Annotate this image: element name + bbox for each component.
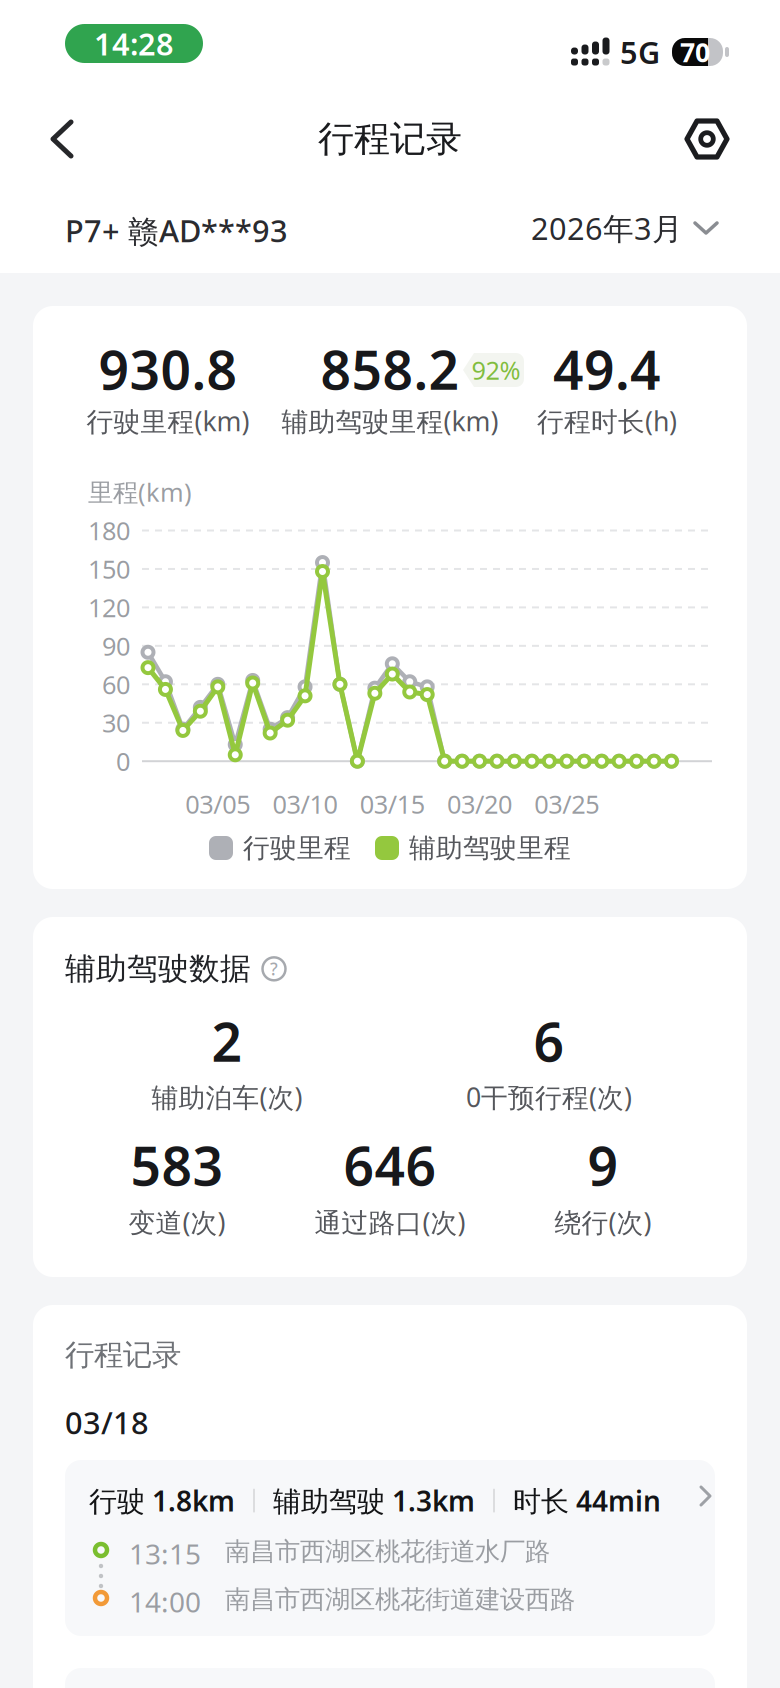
staticText: 03/25 <box>534 787 599 821</box>
staticText: 858.2 <box>320 334 459 404</box>
staticText: 03/05 <box>185 787 250 821</box>
staticText: 5G <box>620 32 660 72</box>
staticText: 辅助泊车(次) <box>151 1079 302 1115</box>
staticText: 930.8 <box>98 334 237 404</box>
button[interactable]: 说明 <box>261 956 287 982</box>
staticText: 30 <box>102 706 130 739</box>
staticText: 14:28 <box>94 23 174 64</box>
staticText: 150 <box>88 552 130 586</box>
staticText: ? <box>270 957 278 980</box>
staticText: 变道(次) <box>128 1204 225 1240</box>
staticText: 9 <box>587 1130 618 1200</box>
staticText: 180 <box>88 514 130 547</box>
staticText: 2026年3月 <box>531 208 683 248</box>
staticText: 行程记录 <box>318 117 462 161</box>
staticText: 03/20 <box>447 787 512 821</box>
staticText: 60 <box>102 667 130 701</box>
staticText: 0 <box>116 744 130 778</box>
staticText: 通过路口(次) <box>314 1204 465 1240</box>
button[interactable]: 选择月份 <box>531 208 719 248</box>
button[interactable]: Back <box>40 111 84 167</box>
staticText: 辅助驾驶 1.3km <box>273 1482 475 1519</box>
staticText: 90 <box>102 629 130 663</box>
staticText: 2 <box>211 1006 242 1076</box>
staticText: 646 <box>343 1130 436 1200</box>
staticText: 03/10 <box>272 787 337 821</box>
staticText: 49.4 <box>553 334 661 404</box>
staticText: 辅助驾驶里程 <box>409 832 571 864</box>
staticText: 绕行(次) <box>554 1204 651 1240</box>
staticText: 0干预行程(次) <box>466 1079 632 1115</box>
staticText: 70 <box>680 34 710 70</box>
staticText: 行驶里程(km) <box>86 403 249 439</box>
staticText: 里程(km) <box>88 475 192 509</box>
button[interactable]: 行程详情 <box>65 1460 715 1636</box>
staticText: 6 <box>533 1006 564 1076</box>
staticText: 南昌市西湖区桃花街道建设西路 <box>225 1584 575 1615</box>
staticText: 时长 44min <box>513 1482 661 1519</box>
staticText: P7+ 赣AD***93 <box>65 210 288 251</box>
staticText: 行驶里程 <box>243 832 351 864</box>
button[interactable]: Settings <box>683 115 731 163</box>
staticText: 辅助驾驶里程(km) <box>281 403 498 439</box>
staticText: 13:15 <box>129 1535 201 1572</box>
staticText: 92% <box>471 353 520 387</box>
staticText: 行驶 1.8km <box>89 1482 235 1519</box>
staticText: 583 <box>130 1130 223 1200</box>
staticText: 行程时长(h) <box>537 403 677 439</box>
staticText: 南昌市西湖区桃花街道水厂路 <box>225 1536 550 1567</box>
staticText: 行程记录 <box>65 1337 181 1373</box>
staticText: 120 <box>88 591 130 624</box>
staticText: 03/18 <box>65 1402 149 1443</box>
staticText: 03/15 <box>360 787 425 821</box>
staticText: 辅助驾驶数据 <box>65 950 251 988</box>
staticText: 14:00 <box>129 1583 201 1620</box>
